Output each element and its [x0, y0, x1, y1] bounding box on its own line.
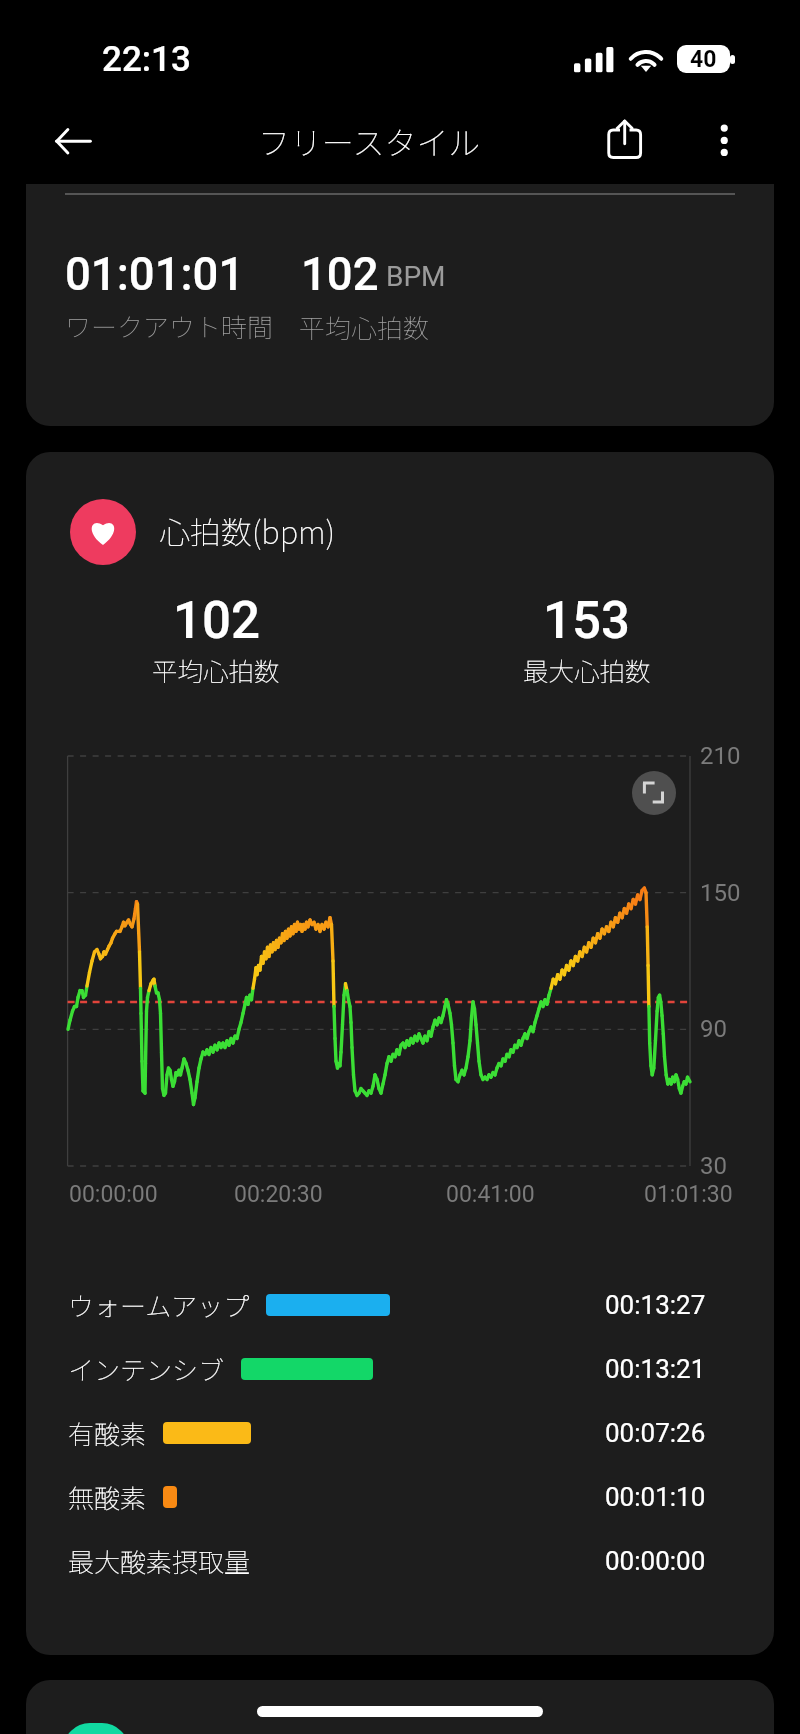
- button[interactable]: Expand chart: [632, 771, 676, 815]
- staticText: 平均心拍数: [152, 651, 280, 688]
- staticText: 30: [700, 1152, 727, 1180]
- staticText: ウォームアップ: [68, 1286, 250, 1324]
- staticText: 01:01:01: [65, 248, 245, 301]
- staticText: インテンシブ: [68, 1350, 225, 1388]
- staticText: 00:13:21: [605, 1354, 706, 1384]
- button[interactable]: 01:01:01: [26, 184, 774, 426]
- staticText: 00:20:30: [234, 1181, 323, 1208]
- staticText: 102: [301, 248, 379, 301]
- staticText: 00:01:10: [605, 1482, 706, 1512]
- staticText: ワークアウト時間: [65, 307, 274, 345]
- staticText: 90: [700, 1015, 727, 1043]
- staticText: 150: [700, 879, 741, 907]
- button[interactable]: [26, 1680, 774, 1734]
- staticText: フリースタイル: [258, 118, 481, 164]
- button[interactable]: 有酸素: [68, 1411, 706, 1455]
- button[interactable]: インテンシブ: [68, 1347, 706, 1391]
- staticText: 心拍数(bpm): [159, 508, 335, 553]
- staticText: 153: [543, 591, 630, 651]
- staticText: 102: [173, 591, 260, 651]
- staticText: 00:00:00: [605, 1546, 706, 1576]
- staticText: 00:41:00: [446, 1181, 535, 1208]
- button[interactable]: Back: [44, 113, 102, 171]
- staticText: 22:13: [102, 39, 191, 80]
- button[interactable]: ウォームアップ: [68, 1283, 706, 1327]
- button[interactable]: 無酸素: [68, 1475, 706, 1519]
- button[interactable]: 最大酸素摂取量: [68, 1539, 706, 1583]
- staticText: 有酸素: [68, 1414, 147, 1452]
- staticText: 01:01:30: [644, 1181, 733, 1208]
- staticText: 00:00:00: [69, 1181, 158, 1208]
- button[interactable]: Share: [596, 113, 654, 171]
- staticText: 最大心拍数: [523, 651, 651, 688]
- button[interactable]: More options: [696, 112, 752, 168]
- staticText: 無酸素: [68, 1478, 147, 1516]
- staticText: 40: [690, 46, 717, 73]
- staticText: 00:13:27: [605, 1290, 706, 1320]
- staticText: 210: [700, 742, 741, 770]
- staticText: 平均心拍数: [299, 308, 430, 346]
- staticText: 最大酸素摂取量: [68, 1542, 251, 1580]
- staticText: BPM: [386, 260, 446, 293]
- staticText: 00:07:26: [605, 1418, 706, 1448]
